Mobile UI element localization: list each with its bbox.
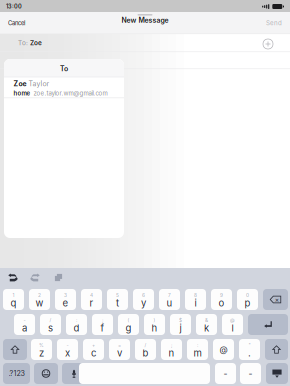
staticText: @: [219, 344, 227, 355]
button[interactable]: Redo: [29, 271, 42, 284]
button[interactable]: f: [92, 314, 113, 335]
staticText: ": [248, 342, 250, 348]
staticText: v: [117, 347, 122, 359]
button[interactable]: o: [211, 289, 232, 310]
button[interactable]: a: [14, 314, 35, 335]
button[interactable]: -: [215, 363, 236, 384]
staticText: @: [230, 317, 235, 323]
staticText: To: [60, 64, 68, 73]
staticText: %: [39, 342, 44, 348]
staticText: 7: [168, 292, 171, 298]
button[interactable]: l: [222, 314, 243, 335]
button[interactable]: r: [81, 289, 102, 310]
staticText: +: [92, 342, 95, 348]
button[interactable]: g: [118, 314, 139, 335]
button[interactable]: s: [40, 314, 61, 335]
staticText: q: [10, 297, 16, 309]
staticText: .: [248, 347, 251, 359]
button[interactable]: Hide Keyboard: [266, 363, 288, 384]
staticText: n: [168, 347, 174, 359]
staticText: ×: [275, 295, 279, 303]
button[interactable]: Paste: [52, 271, 65, 284]
staticText: o: [218, 297, 224, 309]
button[interactable]: space: [79, 363, 210, 384]
button[interactable]: m: [187, 339, 208, 360]
button[interactable]: Shift: [265, 339, 288, 360]
staticText: d: [73, 322, 79, 334]
button[interactable]: Shift: [3, 339, 27, 360]
button[interactable]: v: [109, 339, 130, 360]
staticText: 9: [220, 292, 223, 298]
staticText: Cancel: [8, 19, 25, 27]
button[interactable]: k: [196, 314, 217, 335]
staticText: 1: [12, 292, 14, 298]
staticText: home: [13, 90, 30, 97]
staticText: .?123: [8, 369, 24, 378]
button[interactable]: w: [29, 289, 50, 310]
button[interactable]: Cancel: [0, 13, 33, 33]
staticText: s: [48, 322, 53, 334]
button[interactable]: Delete: [263, 289, 288, 310]
staticText: -: [66, 342, 68, 348]
staticText: Zoe: [13, 80, 26, 88]
staticText: =: [118, 342, 121, 348]
button[interactable]: j: [170, 314, 191, 335]
staticText: b: [142, 347, 148, 359]
staticText: New Message: [121, 16, 168, 24]
staticText: e: [62, 297, 68, 309]
staticText: 8: [194, 292, 197, 298]
button[interactable]: .: [239, 339, 260, 360]
button[interactable]: y: [133, 289, 154, 310]
staticText: -: [223, 368, 227, 379]
button[interactable]: z: [31, 339, 52, 360]
staticText: x: [65, 347, 70, 359]
button[interactable]: Emoji: [34, 363, 58, 384]
staticText: 4: [90, 292, 93, 298]
staticText: To:: [18, 39, 28, 47]
button[interactable]: Undo: [6, 271, 19, 284]
button[interactable]: Add contact: [262, 38, 274, 50]
button[interactable]: e: [55, 289, 76, 310]
staticText: ;: [102, 317, 103, 323]
staticText: 5: [116, 292, 119, 298]
staticText: 2: [38, 292, 41, 298]
button[interactable]: c: [83, 339, 104, 360]
button[interactable]: Return: [248, 314, 288, 335]
button[interactable]: t: [107, 289, 128, 310]
button[interactable]: b: [135, 339, 156, 360]
staticText: c: [91, 347, 96, 359]
staticText: -: [248, 368, 252, 379]
button[interactable]: Send: [258, 13, 290, 33]
staticText: m: [193, 347, 201, 359]
button[interactable]: i: [185, 289, 206, 310]
button[interactable]: Dictate: [62, 363, 86, 384]
staticText: /: [49, 317, 51, 323]
staticText: ;: [171, 342, 172, 348]
button[interactable]: u: [159, 289, 180, 310]
staticText: y: [141, 297, 146, 309]
staticText: z: [39, 347, 44, 359]
staticText: t: [116, 297, 119, 309]
staticText: $: [179, 317, 182, 323]
button[interactable]: @: [213, 339, 234, 360]
staticText: :: [76, 317, 77, 323]
staticText: a: [22, 322, 27, 334]
staticText: u: [166, 297, 172, 309]
button[interactable]: n: [161, 339, 182, 360]
button[interactable]: Numbers: [3, 363, 30, 384]
staticText: p: [244, 297, 250, 309]
button[interactable]: q: [3, 289, 24, 310]
staticText: ): [153, 317, 155, 323]
button[interactable]: h: [144, 314, 165, 335]
staticText: l: [231, 322, 233, 334]
staticText: :: [197, 342, 198, 348]
staticText: g: [125, 322, 131, 334]
staticText: /: [144, 342, 146, 348]
button[interactable]: p: [237, 289, 258, 310]
button[interactable]: d: [66, 314, 87, 335]
button[interactable]: -: [240, 363, 261, 384]
button[interactable]: Zoe: [4, 77, 124, 97]
staticText: h: [151, 322, 157, 334]
staticText: zoe.taylor.wm@gmail.com: [33, 90, 107, 97]
button[interactable]: x: [57, 339, 78, 360]
